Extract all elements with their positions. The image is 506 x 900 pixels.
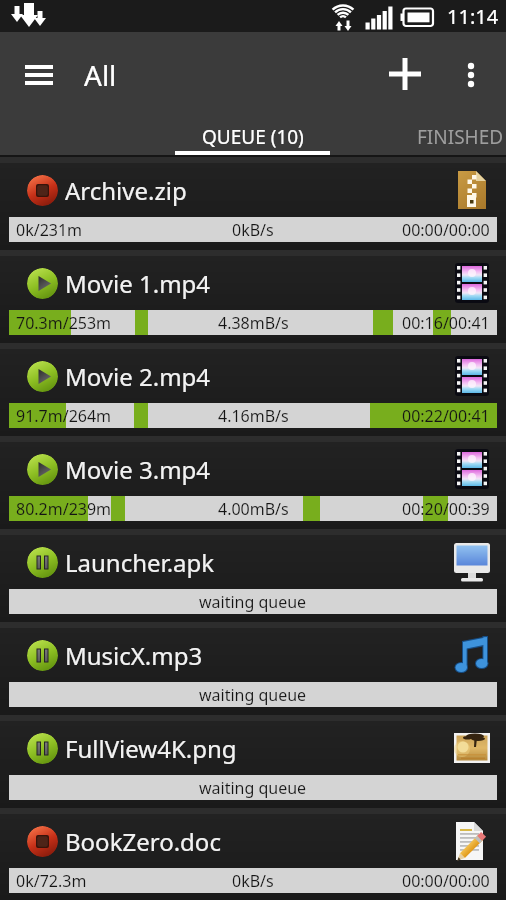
staticText: 00:00/00:00	[402, 219, 490, 241]
button[interactable]	[27, 640, 58, 671]
staticText: 4.16mB/s	[218, 405, 289, 427]
staticText: Archive.zip	[65, 174, 187, 207]
button[interactable]	[27, 175, 58, 206]
button[interactable]	[451, 50, 491, 98]
staticText: 00:00/00:00	[402, 870, 490, 892]
staticText: 80.2m/239m	[16, 498, 112, 520]
button[interactable]: FINISHED	[417, 118, 504, 155]
staticText: FullView4K.png	[65, 732, 237, 765]
button[interactable]	[27, 826, 58, 857]
button[interactable]: Launcher.apk	[0, 535, 506, 622]
staticText: 11:14	[447, 3, 499, 30]
staticText: Movie 1.mp4	[65, 267, 211, 300]
button[interactable]	[15, 65, 63, 93]
button[interactable]: Movie 3.mp4	[0, 442, 506, 529]
staticText: 0k/231m	[16, 219, 83, 241]
staticText: 0kB/s	[232, 870, 274, 892]
button[interactable]	[27, 733, 58, 764]
staticText: 0k/72.3m	[16, 870, 87, 892]
staticText: MusicX.mp3	[65, 639, 203, 672]
button[interactable]: BookZero.doc	[0, 814, 506, 900]
staticText: 0kB/s	[232, 219, 274, 241]
button[interactable]	[27, 268, 58, 299]
button[interactable]: Movie 2.mp4	[0, 349, 506, 436]
button[interactable]: Archive.zip	[0, 163, 506, 250]
staticText: 00:16/00:41	[402, 312, 490, 334]
button[interactable]: MusicX.mp3	[0, 628, 506, 715]
staticText: Movie 3.mp4	[65, 453, 211, 486]
staticText: Launcher.apk	[65, 546, 215, 579]
button[interactable]	[27, 547, 58, 578]
staticText: FINISHED	[417, 124, 504, 150]
button[interactable]	[27, 454, 58, 485]
staticText: 4.00mB/s	[218, 498, 289, 520]
staticText: All	[84, 56, 117, 94]
button[interactable]: FullView4K.png	[0, 721, 506, 808]
staticText: 91.7m/264m	[16, 405, 112, 427]
button[interactable]	[27, 361, 58, 392]
button[interactable]: QUEUE (10)	[175, 118, 330, 155]
staticText: waiting queue	[199, 684, 307, 706]
button[interactable]: Movie 1.mp4	[0, 256, 506, 343]
staticText: 70.3m/253m	[16, 312, 112, 334]
staticText: waiting queue	[199, 777, 307, 799]
staticText: 00:20/00:39	[402, 498, 490, 520]
staticText: waiting queue	[199, 591, 307, 613]
staticText: 4.38mB/s	[218, 312, 289, 334]
staticText: BookZero.doc	[65, 825, 221, 858]
staticText: QUEUE (10)	[202, 124, 304, 150]
staticText: Movie 2.mp4	[65, 360, 211, 393]
button[interactable]	[381, 50, 429, 98]
staticText: 00:22/00:41	[402, 405, 490, 427]
